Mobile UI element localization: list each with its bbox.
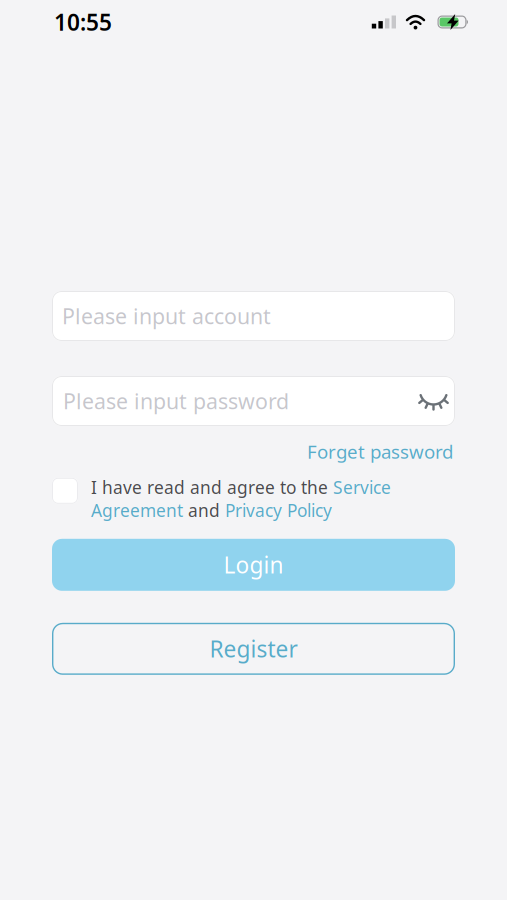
button[interactable]: Service <box>333 476 391 499</box>
staticText: Please input account <box>62 302 271 330</box>
button[interactable]: Privacy Policy <box>225 499 332 522</box>
staticText: and <box>183 499 225 522</box>
staticText: Login <box>223 550 283 580</box>
staticText: I have read and agree to the <box>91 476 333 499</box>
button[interactable]: Agreement <box>91 499 183 522</box>
button[interactable]: Please input password <box>52 376 455 426</box>
button[interactable]: Login <box>52 539 455 591</box>
staticText: Agreement <box>91 499 183 522</box>
staticText: Forget password <box>307 439 453 464</box>
button[interactable]: Forget password <box>307 439 453 464</box>
button[interactable]: Show password <box>419 391 448 411</box>
staticText: Service <box>333 476 391 499</box>
staticText: 10:55 <box>54 7 112 37</box>
button[interactable]: Please input account <box>52 291 455 341</box>
staticText: Please input password <box>63 387 289 415</box>
staticText: Privacy Policy <box>225 499 332 522</box>
button[interactable]: Register <box>52 623 455 675</box>
button[interactable]: Agree to terms <box>52 478 78 504</box>
staticText: Register <box>209 634 297 664</box>
